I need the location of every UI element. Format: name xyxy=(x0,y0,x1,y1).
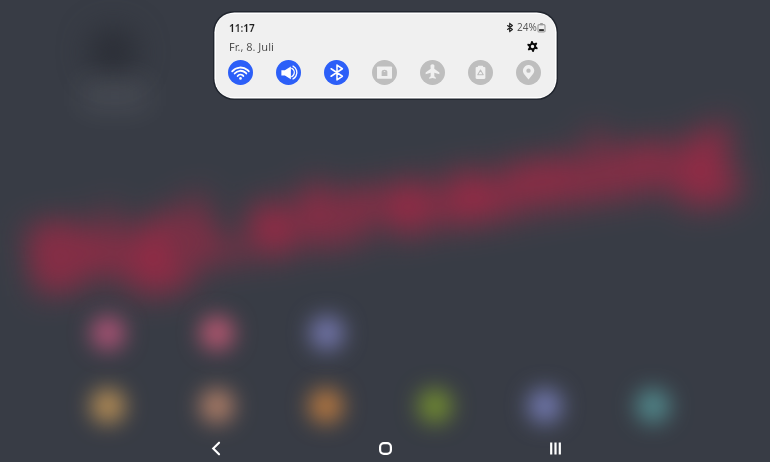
button[interactable]: Settings xyxy=(521,35,543,57)
button[interactable]: Home xyxy=(363,426,407,462)
button[interactable]: Flugmodus xyxy=(420,60,445,85)
button[interactable]: Standort xyxy=(516,60,541,85)
staticText: 24% xyxy=(517,20,537,34)
button[interactable]: Energiesparmodus xyxy=(468,60,493,85)
staticText: Fr., 8. Juli xyxy=(229,39,274,54)
button[interactable]: Recent apps xyxy=(533,426,577,462)
button[interactable]: WLAN xyxy=(228,60,253,85)
staticText: 11:17 xyxy=(229,21,255,35)
button[interactable]: Bluetooth xyxy=(324,60,349,85)
button[interactable]: Bildschirmsperre xyxy=(372,60,397,85)
button[interactable]: Ton xyxy=(276,60,301,85)
button[interactable]: Back xyxy=(194,426,238,462)
